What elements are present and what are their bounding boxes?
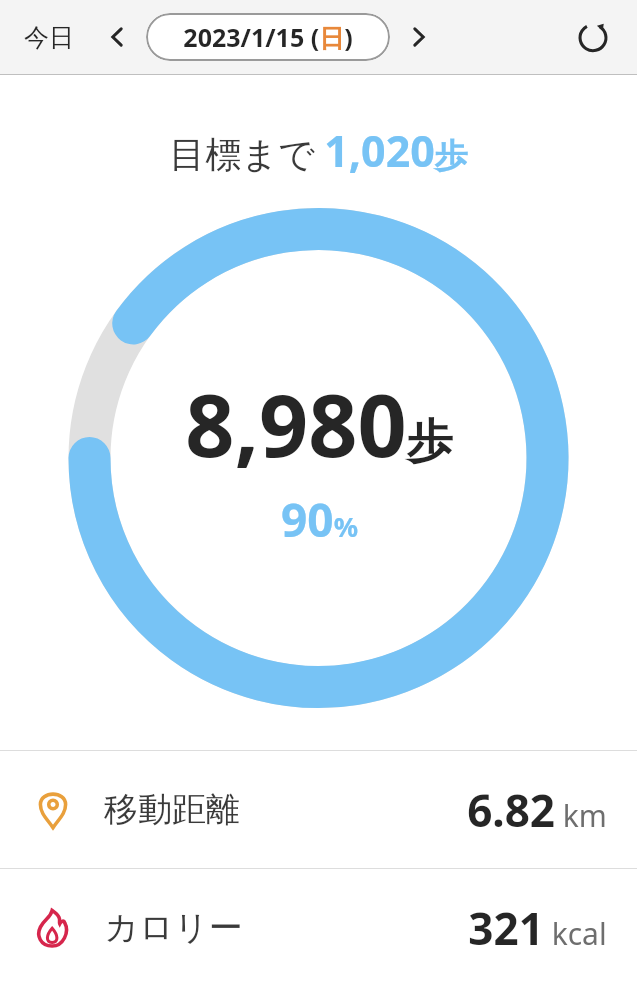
button[interactable]: 今日 <box>18 16 80 59</box>
staticText: カロリー <box>104 906 243 949</box>
staticText: 90% <box>281 488 358 551</box>
staticText: 8,980歩 <box>185 365 453 482</box>
button[interactable]: 2023/1/15 (日) <box>146 13 390 61</box>
button[interactable]: Refresh <box>567 11 619 63</box>
other: Calories <box>30 905 76 951</box>
staticText: 2023/1/15 (日) <box>183 20 353 54</box>
staticText: 今日 <box>24 22 74 53</box>
button[interactable]: Next day <box>396 14 442 60</box>
staticText: 移動距離 <box>104 788 240 831</box>
staticText: 6.82 km <box>467 780 607 840</box>
staticText: 目標まで 1,020歩 <box>169 121 468 180</box>
button[interactable]: Previous day <box>94 14 140 60</box>
other: Distance <box>30 787 76 833</box>
button[interactable]: Distance <box>0 751 637 868</box>
staticText: 321 kcal <box>468 898 607 958</box>
button[interactable]: Calories <box>0 869 637 986</box>
